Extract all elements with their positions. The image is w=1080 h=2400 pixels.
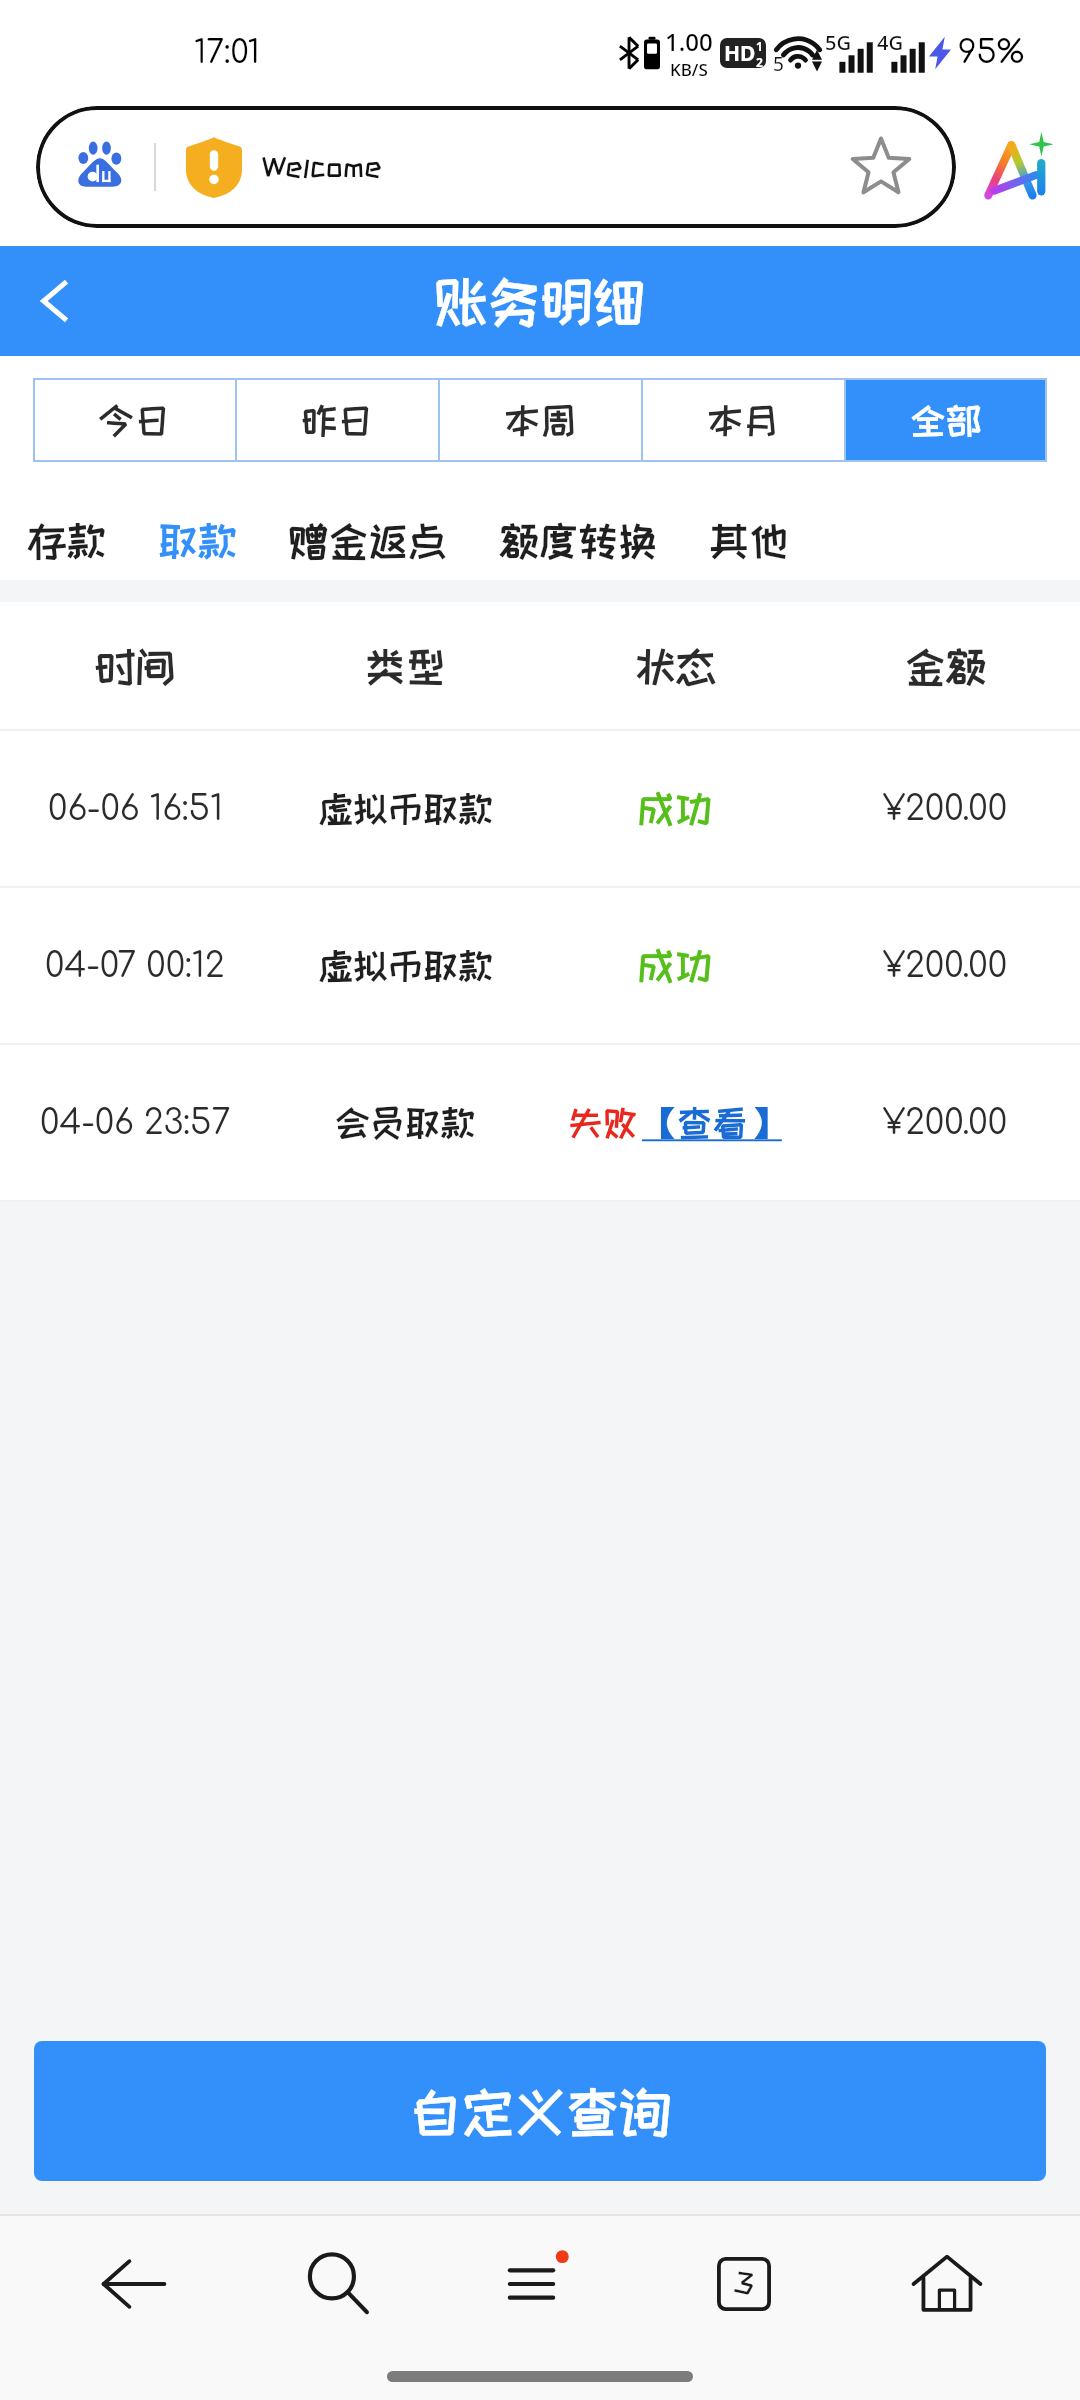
staticText: 1.00 bbox=[665, 25, 713, 58]
staticText: 失败 bbox=[568, 1104, 638, 1142]
staticText: 会员取款 bbox=[335, 1104, 475, 1142]
staticText: 虚拟币取款 bbox=[318, 947, 493, 985]
button[interactable]: 04-07 00:12 bbox=[0, 888, 1080, 1043]
button[interactable]: Search bbox=[236, 2216, 439, 2352]
button[interactable]: 06-06 16:51 bbox=[0, 731, 1080, 886]
button[interactable]: AI assistant bbox=[982, 131, 1054, 203]
staticText: 赠金返点 bbox=[289, 519, 448, 562]
button[interactable]: 取款 bbox=[142, 507, 254, 574]
button[interactable]: 存款 bbox=[11, 507, 123, 574]
button[interactable]: 本周 bbox=[438, 378, 641, 462]
button[interactable]: Back bbox=[16, 261, 96, 341]
staticText: 其他 bbox=[709, 519, 789, 562]
staticText: 类型 bbox=[365, 644, 446, 688]
button[interactable]: 全部 bbox=[844, 378, 1047, 462]
button[interactable]: Bookmark bbox=[846, 132, 916, 202]
button[interactable]: 04-06 23:57 bbox=[0, 1045, 1080, 1200]
button[interactable]: Welcome bbox=[36, 106, 956, 228]
staticText: 本月 bbox=[707, 401, 779, 440]
staticText: 95% bbox=[958, 35, 1025, 71]
button[interactable]: 额度转换 bbox=[483, 507, 674, 574]
staticText: 1 bbox=[756, 38, 763, 54]
button[interactable]: 【查看】 bbox=[642, 1104, 782, 1142]
staticText: KB/S bbox=[670, 58, 708, 81]
staticText: 4G bbox=[877, 29, 903, 56]
staticText: 06-06 16:51 bbox=[48, 790, 223, 828]
staticText: 自定义查询 bbox=[409, 2083, 672, 2140]
button[interactable]: Home bbox=[845, 2216, 1048, 2352]
staticText: 额度转换 bbox=[499, 519, 658, 562]
staticText: 本周 bbox=[504, 401, 576, 440]
staticText: 17:01 bbox=[194, 35, 260, 71]
staticText: 今日 bbox=[98, 401, 170, 440]
staticText: 成功 bbox=[637, 788, 713, 829]
button[interactable]: 自定义查询 bbox=[34, 2041, 1046, 2181]
button[interactable]: Tabs bbox=[642, 2216, 845, 2352]
staticText: 取款 bbox=[158, 519, 238, 562]
staticText: 时间 bbox=[95, 644, 176, 688]
button[interactable]: 昨日 bbox=[235, 378, 438, 462]
staticText: 成功 bbox=[637, 945, 713, 986]
staticText: 04-07 00:12 bbox=[45, 947, 225, 985]
staticText: 5 bbox=[773, 51, 784, 77]
button[interactable]: 本月 bbox=[641, 378, 844, 462]
button[interactable]: Back bbox=[32, 2216, 236, 2352]
button[interactable]: 今日 bbox=[33, 378, 235, 462]
staticText: HD bbox=[724, 39, 756, 68]
staticText: 状态 bbox=[635, 644, 716, 688]
staticText: ¥200.00 bbox=[883, 947, 1008, 985]
staticText: 账务明细 bbox=[435, 273, 645, 330]
staticText: Welcome bbox=[262, 152, 382, 182]
staticText: ¥200.00 bbox=[883, 1104, 1008, 1142]
staticText: 虚拟币取款 bbox=[318, 790, 493, 828]
staticText: 2 bbox=[756, 54, 763, 68]
staticText: 昨日 bbox=[301, 401, 373, 440]
staticText: ¥200.00 bbox=[883, 790, 1008, 828]
button[interactable]: Menu bbox=[439, 2216, 642, 2352]
button[interactable]: 赠金返点 bbox=[273, 507, 464, 574]
staticText: 5G bbox=[825, 29, 851, 56]
staticText: 金额 bbox=[905, 644, 986, 688]
staticText: 全部 bbox=[910, 401, 982, 440]
staticText: 3 bbox=[734, 2268, 754, 2298]
staticText: 存款 bbox=[27, 519, 107, 562]
staticText: 04-06 23:57 bbox=[40, 1104, 231, 1142]
button[interactable]: 其他 bbox=[693, 507, 805, 574]
